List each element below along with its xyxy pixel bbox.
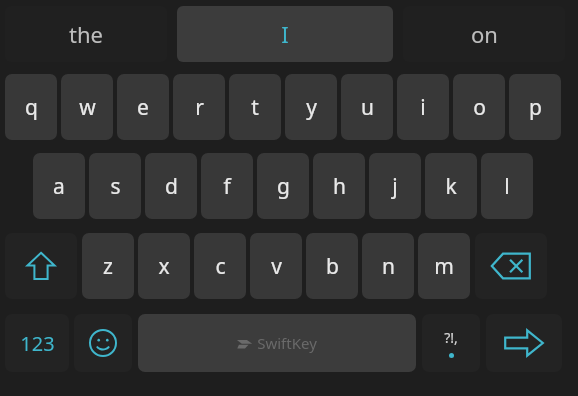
staticText: l [504,172,510,201]
button[interactable]: e [117,74,169,140]
button[interactable]: m [418,233,470,299]
button[interactable]: l [481,153,533,219]
button[interactable]: u [341,74,393,140]
button[interactable]: j [369,153,421,219]
staticText: I [281,19,289,49]
staticText: SwiftKey [257,333,317,353]
staticText: i [420,93,426,122]
staticText: n [382,252,395,281]
staticText: s [110,172,121,201]
staticText: a [53,172,65,201]
button[interactable]: f [201,153,253,219]
staticText: on [471,19,498,49]
button[interactable]: Emoji [74,314,132,372]
staticText: ?!, [444,328,458,347]
button[interactable]: the [5,6,167,62]
button[interactable]: w [61,74,113,140]
staticText: w [79,93,96,122]
staticText: v [271,252,282,281]
staticText: d [165,172,178,201]
button[interactable]: k [425,153,477,219]
button[interactable]: c [194,233,246,299]
staticText: x [158,252,170,281]
staticText: y [306,93,317,122]
button[interactable]: ?!, [422,314,480,372]
button[interactable]: i [397,74,449,140]
button[interactable]: I [177,6,393,62]
button[interactable]: r [173,74,225,140]
button[interactable]: s [89,153,141,219]
staticText: j [392,172,398,201]
button[interactable]: o [453,74,505,140]
button[interactable]: v [250,233,302,299]
staticText: r [195,93,204,122]
staticText: f [223,172,231,201]
button[interactable]: on [403,6,565,62]
button[interactable]: SwiftKey [138,314,416,372]
button[interactable]: h [313,153,365,219]
staticText: t [251,93,259,122]
button[interactable]: d [145,153,197,219]
button[interactable]: 123 [5,314,69,372]
staticText: z [103,252,113,281]
button[interactable]: q [5,74,57,140]
staticText: u [361,93,374,122]
staticText: c [215,252,226,281]
staticText: 123 [20,330,55,357]
staticText: m [434,252,454,281]
button[interactable]: Shift [5,233,77,299]
staticText: p [529,93,542,122]
button[interactable]: Backspace [475,233,547,299]
button[interactable]: t [229,74,281,140]
button[interactable]: a [33,153,85,219]
staticText: g [277,172,290,201]
button[interactable]: x [138,233,190,299]
button[interactable]: b [306,233,358,299]
staticText: o [473,93,486,122]
button[interactable]: n [362,233,414,299]
staticText: h [333,172,346,201]
staticText: k [445,172,457,201]
button[interactable]: y [285,74,337,140]
staticText: the [69,19,103,49]
button[interactable]: Enter [486,314,562,372]
staticText: e [137,93,149,122]
staticText: q [25,93,38,122]
staticText: b [326,252,339,281]
button[interactable]: p [509,74,561,140]
button[interactable]: z [82,233,134,299]
button[interactable]: g [257,153,309,219]
